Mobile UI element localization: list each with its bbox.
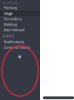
staticText: Secondary <box>3 16 21 21</box>
staticText: Pitching <box>3 5 16 10</box>
button[interactable]: Notifications <box>0 39 40 44</box>
staticText: International <box>3 27 24 32</box>
button[interactable]: International <box>0 27 40 32</box>
button[interactable]: Rotating <box>0 21 40 27</box>
button[interactable]: Stage <box>0 10 40 16</box>
button[interactable]: General setting <box>0 44 40 50</box>
button[interactable]: Secondary <box>0 16 40 21</box>
staticText: Notifications <box>3 39 24 44</box>
staticText: Rotating <box>3 22 16 27</box>
staticText: #PRACTICE <box>2 1 17 4</box>
staticText: #RANGE <box>2 35 13 38</box>
staticText: Stage <box>3 11 12 16</box>
button[interactable]: Pitching <box>0 5 40 10</box>
staticText: General setting <box>3 45 29 50</box>
